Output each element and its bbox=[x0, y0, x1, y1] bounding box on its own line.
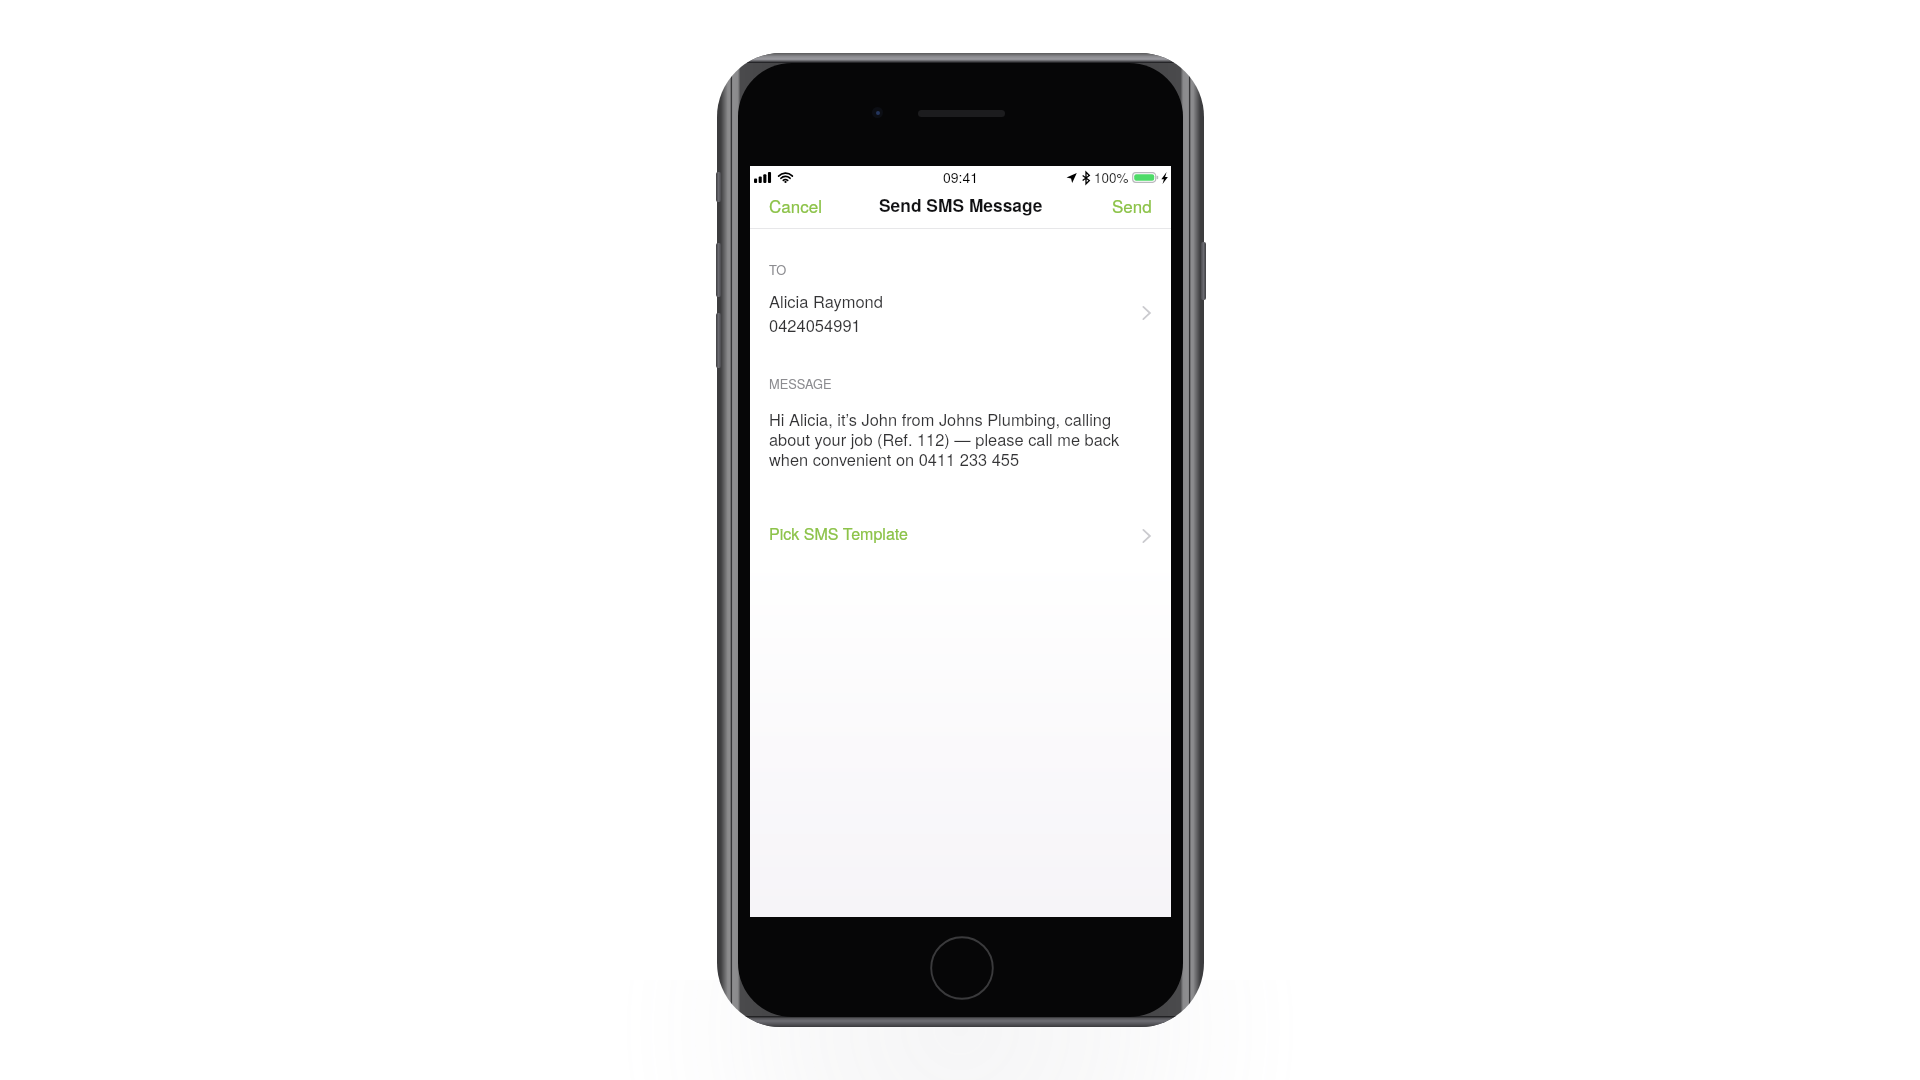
staticText: 0424054991 bbox=[769, 313, 861, 337]
staticText: Alicia Raymond bbox=[769, 289, 883, 313]
staticText: Send SMS Message bbox=[879, 192, 1043, 217]
button[interactable]: Alicia Raymond bbox=[750, 285, 1171, 341]
other: Open bbox=[1142, 529, 1151, 543]
staticText: Pick SMS Template bbox=[769, 522, 1161, 545]
button[interactable]: Pick SMS Template bbox=[750, 511, 1171, 555]
button[interactable]: Send bbox=[1098, 190, 1171, 229]
staticText: Send bbox=[1112, 193, 1152, 217]
staticText: 100% bbox=[1094, 168, 1129, 187]
other: Open bbox=[1142, 306, 1151, 320]
staticText: Cancel bbox=[769, 193, 822, 217]
staticText: TO bbox=[769, 260, 787, 278]
staticText: 09:41 bbox=[943, 167, 979, 187]
staticText: MESSAGE bbox=[769, 374, 832, 392]
button[interactable]: Cancel bbox=[750, 190, 836, 229]
staticText: Hi Alicia, it’s John from Johns Plumbing… bbox=[769, 407, 1131, 471]
